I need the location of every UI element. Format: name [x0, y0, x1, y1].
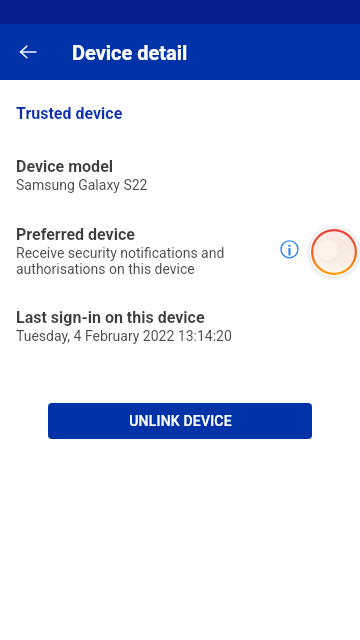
staticText: Tuesday, 4 February 2022 13:14:20: [16, 328, 232, 344]
button[interactable]: Last sign-in on this device: [0, 301, 360, 349]
staticText: Last sign-in on this device: [16, 308, 205, 327]
staticText: Samsung Galaxy S22: [16, 177, 148, 193]
staticText: Preferred device: [16, 225, 135, 244]
button[interactable]: Preferred device: [0, 218, 360, 282]
staticText: Receive security notifications and autho…: [16, 245, 225, 277]
button[interactable]: UNLINK DEVICE: [48, 403, 312, 439]
staticText: Device model: [16, 157, 113, 176]
staticText: UNLINK DEVICE: [129, 413, 232, 429]
button[interactable]: Information: [273, 233, 305, 265]
staticText: Trusted device: [16, 104, 123, 123]
button[interactable]: Back: [8, 32, 48, 72]
staticText: Device detail: [72, 41, 188, 64]
button[interactable]: Device model: [0, 150, 360, 198]
